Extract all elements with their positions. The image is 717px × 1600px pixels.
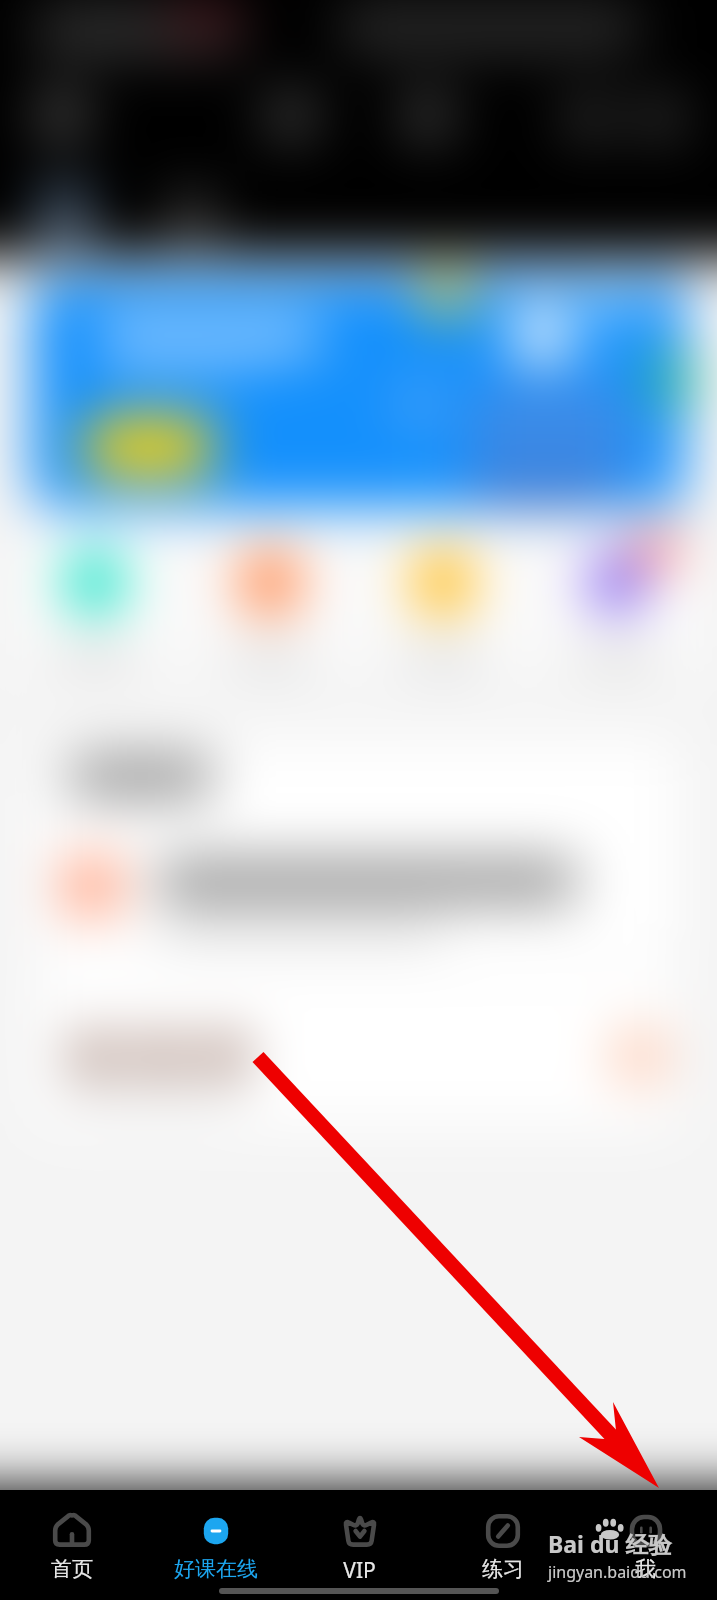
button[interactable]: VIP <box>288 1490 431 1600</box>
button[interactable]: Online courses <box>144 1490 288 1600</box>
staticText: 好课在线 <box>174 1556 258 1582</box>
staticText: VIP <box>343 1556 376 1585</box>
button[interactable]: Me <box>574 1490 717 1600</box>
button[interactable]: Home <box>0 1490 144 1600</box>
staticText: jingyan.baidu.com <box>548 1561 687 1583</box>
button[interactable]: Practice <box>431 1490 574 1600</box>
staticText: 我 <box>635 1556 656 1582</box>
staticText: Bai du 经验 <box>548 1528 672 1559</box>
staticText: 首页 <box>51 1556 93 1582</box>
staticText: 练习 <box>482 1556 524 1582</box>
